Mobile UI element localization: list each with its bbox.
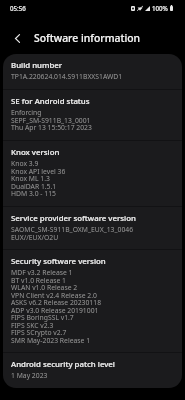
staticText: SEPF_SM-S911B_13_0001 <box>11 117 91 125</box>
staticText: Build number <box>11 61 63 70</box>
staticText: Knox version <box>11 148 60 157</box>
staticText: Android security patch level <box>11 360 115 369</box>
button[interactable]: Android security patch level <box>3 353 182 388</box>
staticText: Knox API level 36 <box>11 168 66 176</box>
button[interactable]: SE for Android status <box>3 90 182 140</box>
staticText: FIPS SKC v2.3 <box>11 322 54 330</box>
staticText: 100% <box>152 4 168 12</box>
staticText: 1 May 2023 <box>11 372 48 380</box>
staticText: Enforcing <box>11 109 42 117</box>
staticText: WLAN v1.0 Release 2 <box>11 284 78 292</box>
button[interactable]: Navigate up <box>0 24 34 54</box>
staticText: BT v1.0 Release 1 <box>11 277 66 285</box>
staticText: Service provider software version <box>11 214 136 223</box>
staticText: 05:56 <box>10 4 26 12</box>
button[interactable]: Security software version <box>3 250 182 352</box>
staticText: ADP v3.0 Release 20191001 <box>11 307 99 315</box>
staticText: Software information <box>34 31 141 45</box>
button[interactable]: Build number <box>3 54 182 89</box>
staticText: HDM 3.0 - 115 <box>11 190 56 198</box>
staticText: Knox 3.9 <box>11 160 39 168</box>
staticText: Thu Apr 13 15:50:17 2023 <box>11 124 92 132</box>
staticText: MDF v3.2 Release 1 <box>11 269 73 277</box>
staticText: SE for Android status <box>11 97 90 106</box>
staticText: SAOMC_SM-S911B_OXM_EUX_13_0046 <box>11 226 134 234</box>
staticText: FIPS BoringSSL v1.7 <box>11 314 74 322</box>
staticText: EUX//EUX/O2U <box>11 234 59 242</box>
button[interactable]: Service provider software version <box>3 207 182 249</box>
staticText: FIPS SCrypto v2.7 <box>11 329 67 337</box>
staticText: Security software version <box>11 257 106 266</box>
staticText: Knox ML 1.3 <box>11 175 50 183</box>
staticText: DualDAR 1.5.1 <box>11 183 57 191</box>
staticText: VPN Client v2.4 Release 2.0 <box>11 292 97 300</box>
staticText: TP1A.220624.014.S911BXXS1AWD1 <box>11 73 123 81</box>
staticText: ASKS v6.2 Release 20230118 <box>11 299 102 307</box>
staticText: SMR May-2023 Release 1 <box>11 337 91 345</box>
button[interactable]: Knox version <box>3 141 182 206</box>
